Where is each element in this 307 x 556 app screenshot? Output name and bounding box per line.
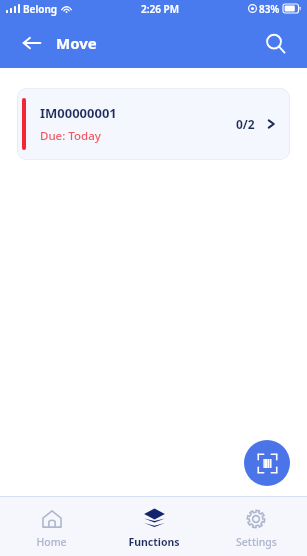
staticText: Belong: [23, 2, 58, 16]
staticText: 0/2: [236, 116, 255, 132]
staticText: 2:26 PM: [141, 2, 179, 16]
staticText: 83%: [259, 2, 280, 16]
button[interactable]: Scan barcode: [244, 440, 290, 486]
button[interactable]: Back: [12, 23, 52, 63]
staticText: Functions: [128, 535, 180, 549]
button[interactable]: Search: [255, 23, 295, 63]
staticText: Move: [56, 33, 97, 53]
staticText: Settings: [236, 535, 277, 549]
staticText: Home: [36, 535, 67, 549]
button[interactable]: Home: [0, 504, 103, 549]
staticText: IM00000001: [40, 104, 117, 122]
button[interactable]: Settings: [205, 504, 307, 549]
staticText: Due: Today: [40, 128, 101, 144]
button[interactable]: IM00000001: [17, 88, 290, 160]
button[interactable]: Functions: [103, 503, 205, 549]
